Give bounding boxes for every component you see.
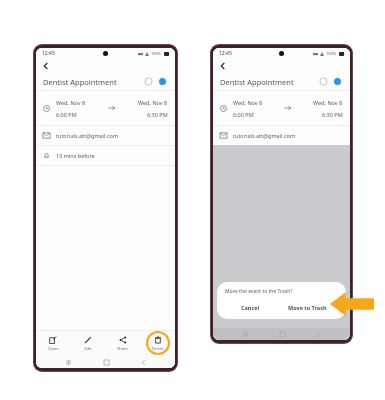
button[interactable]: Calendar colour — [332, 76, 343, 87]
staticText: 6:00 PM — [233, 111, 254, 118]
staticText: Delete — [151, 346, 164, 351]
button[interactable]: Edit options — [318, 76, 329, 87]
staticText: Wed, Nov 8 — [138, 99, 168, 106]
button[interactable]: Back — [313, 329, 323, 339]
button[interactable]: Share — [105, 333, 140, 354]
staticText: Edit — [84, 346, 92, 351]
staticText: 6:30 PM — [322, 111, 343, 118]
staticText: 12:45 — [42, 50, 55, 57]
button[interactable]: Home — [277, 329, 287, 339]
staticText: Wed, Nov 8 — [233, 99, 263, 106]
button[interactable]: tutorials.att@gmail.com — [36, 126, 175, 145]
button[interactable]: Back — [40, 60, 52, 72]
button[interactable]: Open — [36, 333, 70, 354]
button[interactable]: Cancel — [225, 302, 276, 313]
other: Arrow pointing to Move to Trash — [330, 292, 374, 316]
button[interactable]: Home — [101, 357, 111, 367]
staticText: Share — [117, 346, 128, 351]
button[interactable]: 10 mins before — [36, 146, 175, 165]
button[interactable]: Calendar colour — [157, 76, 168, 87]
staticText: tutorials.att@gmail.com — [233, 132, 296, 139]
button[interactable]: Move to Trash — [276, 302, 338, 313]
staticText: Open — [48, 346, 59, 351]
button[interactable]: Recents — [240, 329, 250, 339]
staticText: Move to Trash — [288, 304, 327, 311]
staticText: Wed, Nov 8 — [56, 99, 86, 106]
button[interactable]: tutorials.att@gmail.com — [213, 126, 350, 145]
staticText: 100% — [326, 51, 337, 56]
button[interactable]: Back — [138, 357, 148, 367]
button[interactable]: Wed, Nov 8 — [213, 91, 350, 125]
staticText: 6:00 PM — [56, 111, 77, 118]
staticText: 10 mins before — [56, 152, 95, 159]
button[interactable]: Edit options — [143, 76, 154, 87]
staticText: 6:30 PM — [147, 111, 168, 118]
staticText: Cancel — [241, 304, 260, 311]
staticText: Wed, Nov 8 — [313, 99, 343, 106]
staticText: tutorials.att@gmail.com — [56, 132, 119, 139]
button[interactable]: Delete — [151, 333, 164, 354]
staticText: 12:45 — [219, 50, 232, 57]
button[interactable]: Back — [217, 60, 229, 72]
button[interactable]: Recents — [63, 357, 73, 367]
staticText: Dentist Appointment — [220, 77, 294, 87]
staticText: Dentist Appointment — [43, 77, 117, 87]
staticText: 100% — [151, 51, 162, 56]
staticText: Move the event to the Trash? — [225, 288, 293, 295]
button[interactable]: Wed, Nov 8 — [36, 91, 175, 125]
button[interactable]: Edit — [70, 333, 105, 354]
